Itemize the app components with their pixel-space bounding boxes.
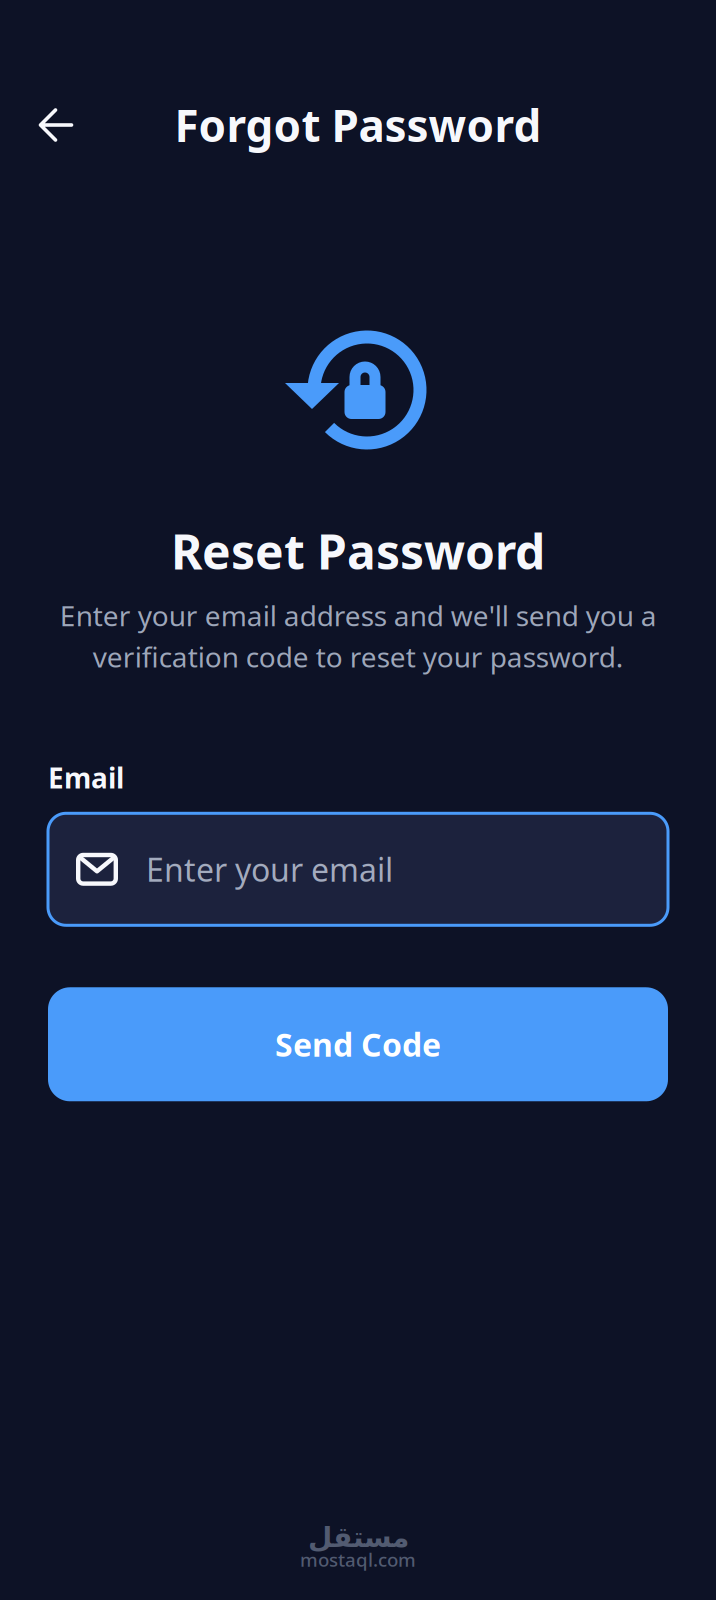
staticText: Reset Password <box>171 519 545 583</box>
button[interactable]: Send Code <box>48 987 668 1101</box>
staticText: Forgot Password <box>174 96 541 154</box>
button[interactable]: Enter your email <box>48 813 668 925</box>
staticText: Email <box>48 759 124 796</box>
staticText: Send Code <box>275 1023 441 1065</box>
staticText: Enter your email <box>146 848 393 890</box>
staticText: mostaql.com <box>300 1547 416 1572</box>
staticText: Enter your email address and we'll send … <box>59 597 656 675</box>
button[interactable]: Back <box>27 96 85 154</box>
staticText: مستقل <box>307 1521 408 1553</box>
